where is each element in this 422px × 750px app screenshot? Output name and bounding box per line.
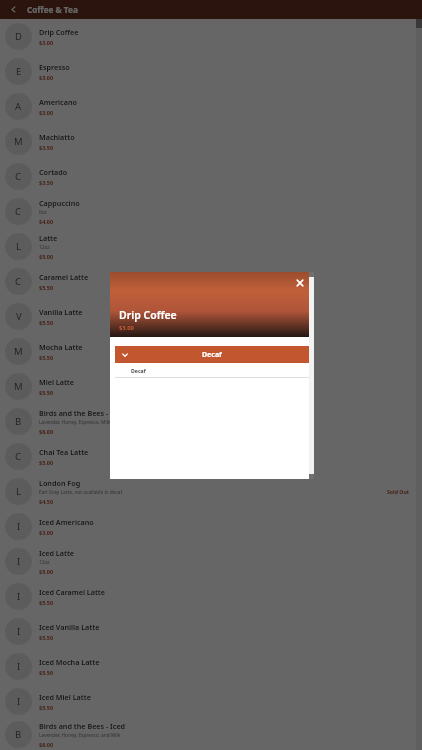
button[interactable]: Decaf (115, 363, 309, 377)
staticText: M (14, 345, 23, 358)
staticText: $6.00 (39, 428, 54, 435)
staticText: Caramel Latte (39, 272, 89, 282)
staticText: Miel Latte (39, 377, 74, 387)
staticText: $3.50 (39, 144, 54, 151)
staticText: A (15, 100, 22, 113)
staticText: $3.00 (39, 74, 54, 81)
staticText: $5.50 (39, 354, 54, 361)
staticText: L (16, 240, 21, 253)
button[interactable]: C (0, 439, 422, 474)
staticText: Birds and the Bees - Hot (39, 408, 123, 418)
staticText: Mocha Latte (39, 342, 83, 352)
button[interactable]: M (0, 369, 422, 404)
button[interactable]: I (0, 579, 422, 614)
staticText: E (16, 65, 22, 78)
staticText: L (16, 485, 21, 498)
button[interactable]: C (0, 264, 422, 299)
staticText: C (15, 170, 22, 183)
staticText: I (17, 695, 21, 708)
staticText: I (17, 555, 21, 568)
staticText: $5.50 (39, 669, 54, 676)
button[interactable]: I (0, 614, 422, 649)
staticText: M (14, 135, 23, 148)
staticText: Decaf (131, 367, 146, 374)
button[interactable]: D (0, 19, 422, 54)
staticText: Decaf (202, 350, 222, 360)
staticText: B (15, 728, 22, 741)
staticText: $4.50 (39, 498, 54, 505)
button[interactable]: Close (293, 276, 307, 290)
staticText: Espresso (39, 62, 70, 72)
button[interactable]: A (0, 89, 422, 124)
staticText: C (15, 205, 22, 218)
staticText: $5.50 (39, 599, 54, 606)
staticText: $5.00 (39, 459, 54, 466)
button[interactable]: M (0, 124, 422, 159)
staticText: $5.50 (39, 319, 54, 326)
staticText: Vanilla Latte (39, 307, 83, 317)
staticText: Birds and the Bees - Iced (39, 721, 126, 731)
staticText: Iced Mocha Latte (39, 657, 100, 667)
staticText: $3.00 (39, 39, 54, 46)
button[interactable]: C (0, 194, 422, 229)
button[interactable]: V (0, 299, 422, 334)
staticText: Latte (39, 233, 58, 243)
staticText: Sold Out (387, 488, 410, 495)
staticText: $5.00 (39, 568, 54, 575)
staticText: $5.00 (39, 253, 54, 260)
staticText: 12oz (39, 559, 50, 566)
staticText: C (15, 450, 22, 463)
staticText: I (17, 660, 21, 673)
button[interactable]: M (0, 334, 422, 369)
staticText: $5.50 (39, 634, 54, 641)
staticText: Iced Vanilla Latte (39, 622, 100, 632)
staticText: 12oz (39, 244, 50, 251)
staticText: London Fog (39, 478, 81, 488)
button[interactable]: C (0, 159, 422, 194)
staticText: D (15, 30, 22, 43)
button[interactable]: L (0, 474, 422, 509)
staticText: $5.50 (39, 389, 54, 396)
button[interactable]: I (0, 509, 422, 544)
button[interactable]: Back (7, 3, 20, 16)
staticText: Lavender, Honey, Espresso, and Milk (39, 732, 121, 739)
staticText: $3.00 (39, 109, 54, 116)
button[interactable]: B (0, 719, 422, 750)
button[interactable]: L (0, 229, 422, 264)
staticText: Americano (39, 97, 77, 107)
button[interactable]: B (0, 404, 422, 439)
staticText: Cappuccino (39, 198, 80, 208)
staticText: I (17, 590, 21, 603)
staticText: $6.00 (39, 741, 54, 748)
staticText: M (14, 380, 23, 393)
button[interactable]: I (0, 684, 422, 719)
staticText: Iced Miel Latte (39, 692, 91, 702)
staticText: C (15, 275, 22, 288)
staticText: Coffee & Tea (27, 4, 78, 15)
staticText: $3.00 (119, 324, 134, 332)
staticText: $5.50 (39, 704, 54, 711)
staticText: Machiatto (39, 132, 75, 142)
staticText: I (17, 520, 21, 533)
staticText: Chai Tea Latte (39, 447, 89, 457)
staticText: $3.50 (39, 179, 54, 186)
staticText: 6oz (39, 209, 47, 216)
staticText: V (16, 310, 22, 323)
staticText: Iced Caramel Latte (39, 587, 105, 597)
staticText: Cortado (39, 167, 68, 177)
button[interactable]: E (0, 54, 422, 89)
button[interactable]: I (0, 649, 422, 684)
button[interactable] (0, 0, 422, 750)
staticText: Drip Coffee (39, 27, 79, 37)
staticText: Iced Americano (39, 517, 94, 527)
staticText: Iced Latte (39, 548, 75, 558)
staticText: B (15, 415, 22, 428)
staticText: Lavender, Honey, Espresso, Milk (39, 419, 111, 426)
button[interactable]: I (0, 544, 422, 579)
staticText: I (17, 625, 21, 638)
staticText: Earl Grey Latte, not available in decaf. (39, 489, 124, 496)
button[interactable]: Decaf (115, 346, 309, 363)
staticText: Drip Coffee (119, 308, 177, 322)
staticText: $5.50 (39, 284, 54, 291)
staticText: $4.00 (39, 218, 54, 225)
